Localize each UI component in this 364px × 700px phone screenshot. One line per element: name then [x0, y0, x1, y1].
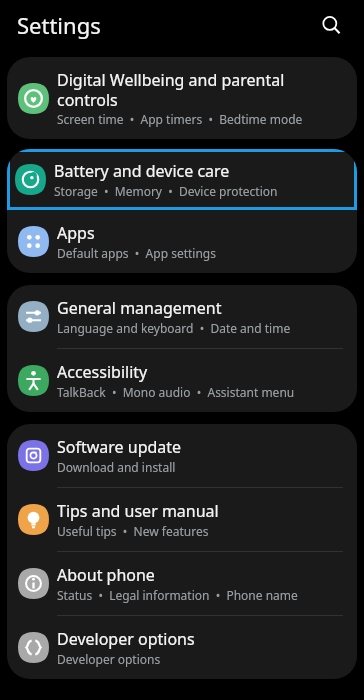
button[interactable]: Accessibility	[7, 349, 357, 412]
staticText: Status • Legal information • Phone name	[57, 587, 298, 603]
button[interactable]: Apps	[7, 210, 357, 273]
button[interactable]: About phone	[7, 552, 357, 615]
staticText: Developer options	[57, 628, 195, 650]
staticText: About phone	[57, 564, 155, 586]
staticText: Accessibility	[57, 361, 148, 383]
staticText: General management	[57, 297, 222, 319]
button[interactable]: General management	[7, 285, 357, 348]
staticText: Digital Wellbeing and parental controls	[57, 69, 343, 110]
staticText: Software update	[57, 436, 182, 458]
staticText: Apps	[57, 222, 95, 244]
staticText: Developer options	[57, 651, 161, 667]
staticText: Storage • Memory • Device protection	[54, 183, 278, 199]
button[interactable]: Battery and device care	[7, 149, 357, 210]
staticText: Default apps • App settings	[57, 245, 216, 261]
staticText: Language and keyboard • Date and time	[57, 320, 291, 336]
staticText: TalkBack • Mono audio • Assistant menu	[57, 384, 295, 400]
button[interactable]: Digital Wellbeing and parental controls	[7, 57, 357, 139]
staticText: Download and install	[57, 459, 176, 475]
button[interactable]: Developer options	[7, 616, 357, 679]
button[interactable]: Search	[312, 6, 350, 44]
staticText: Tips and user manual	[57, 500, 219, 522]
staticText: Screen time • App timers • Bedtime mode	[57, 111, 303, 127]
button[interactable]: Software update	[7, 424, 357, 487]
button[interactable]: Tips and user manual	[7, 488, 357, 551]
staticText: Settings	[17, 10, 101, 40]
staticText: Useful tips • New features	[57, 523, 209, 539]
staticText: Battery and device care	[54, 160, 230, 182]
